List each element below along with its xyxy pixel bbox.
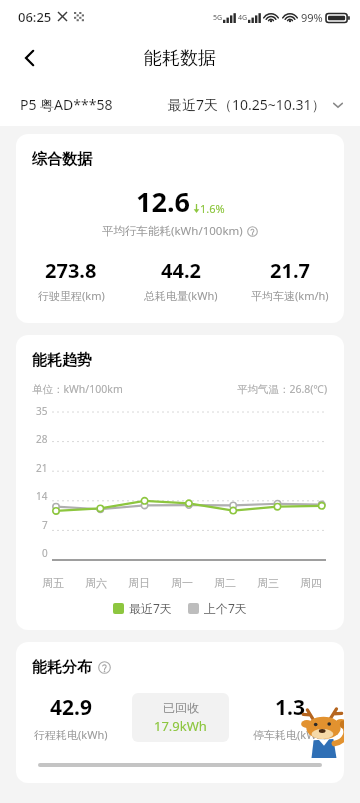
staticText: 平均气温：26.8(℃) <box>237 382 328 396</box>
staticText: 28 <box>36 432 48 446</box>
staticText: 1.3 <box>275 693 305 722</box>
staticText: 周五 <box>42 576 72 590</box>
staticText: 4G <box>238 13 248 23</box>
staticText: 平均行车能耗(kWh/100km) <box>102 223 243 239</box>
staticText: 35 <box>36 404 48 418</box>
staticText: 0 <box>42 546 48 560</box>
staticText: 周六 <box>85 576 115 590</box>
staticText: 能耗趋势 <box>32 351 92 370</box>
staticText: 综合数据 <box>32 150 92 169</box>
staticText: 能耗分布 <box>32 658 92 677</box>
staticText: 5G <box>213 13 223 23</box>
button[interactable]: Back <box>8 36 52 80</box>
staticText: 273.8 <box>45 257 97 284</box>
staticText: 周一 <box>171 576 201 590</box>
staticText: 14 <box>36 489 48 503</box>
staticText: 06:25 <box>18 8 52 26</box>
staticText: 上个7天 <box>204 600 247 616</box>
staticText: 17.9kWh <box>154 717 207 735</box>
staticText: 99% <box>301 10 323 25</box>
staticText: 44.2 <box>161 257 201 284</box>
staticText: 7 <box>42 518 48 532</box>
staticText: 21.7 <box>270 257 310 284</box>
staticText: 最近7天 <box>129 600 172 616</box>
staticText: 周日 <box>128 576 158 590</box>
button[interactable]: 最近7天（10.25~10.31） <box>164 91 348 118</box>
staticText: 行程耗电(kWh) <box>34 727 108 742</box>
staticText: 总耗电量(kWh) <box>144 288 218 303</box>
staticText: 42.9 <box>50 693 92 722</box>
button[interactable]: 能耗趋势 <box>16 335 344 630</box>
staticText: 最近7天（10.25~10.31） <box>168 95 326 114</box>
staticText: P5 粤AD***58 <box>20 95 113 114</box>
staticText: 周二 <box>214 576 244 590</box>
button[interactable]: 能耗分布 <box>16 642 344 783</box>
staticText: 周三 <box>257 576 287 590</box>
staticText: 已回收 <box>163 700 199 715</box>
staticText: 周四 <box>300 576 330 590</box>
staticText: 停车耗电(kWh) <box>253 727 327 742</box>
staticText: 平均车速(km/h) <box>251 288 329 303</box>
staticText: 行驶里程(km) <box>38 288 105 303</box>
staticText: 单位：kWh/100km <box>32 382 123 396</box>
staticText: 21 <box>36 461 48 475</box>
staticText: 12.6 <box>136 183 190 220</box>
staticText: 能耗数据 <box>144 47 216 70</box>
staticText: 1.6% <box>200 201 225 216</box>
button[interactable]: 综合数据 <box>16 134 344 323</box>
